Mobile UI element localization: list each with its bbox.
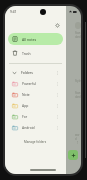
staticText: ⋮: [56, 71, 60, 75]
staticText: Manage folders: [24, 140, 47, 144]
staticText: ⋮: [56, 93, 60, 97]
button[interactable]: New note: [68, 150, 78, 160]
staticText: Note: [22, 92, 30, 97]
button[interactable]: Folders: [5, 67, 66, 78]
staticText: 1: [77, 141, 79, 145]
button[interactable]: Powerful: [5, 78, 66, 89]
staticText: ⋮: [56, 126, 60, 130]
button[interactable]: Settings: [53, 21, 62, 30]
button[interactable]: Manage folders: [5, 137, 66, 146]
button[interactable]: Note: [5, 89, 66, 100]
staticText: Standard: [75, 31, 81, 39]
staticText: ⋮: [56, 82, 60, 86]
staticText: ⋮: [56, 104, 60, 108]
button[interactable]: For: [5, 111, 66, 122]
button[interactable]: Trash: [8, 47, 63, 59]
button[interactable]: App: [5, 100, 66, 111]
staticText: For: [22, 114, 28, 119]
staticText: word: [75, 133, 81, 141]
staticText: App: [22, 103, 29, 108]
staticText: ⋮: [56, 115, 60, 119]
staticText: Powerful: [22, 81, 37, 86]
button[interactable]: Android: [5, 122, 66, 133]
staticText: Style: [75, 79, 81, 83]
staticText: Trash: [22, 51, 31, 56]
staticText: 9:41: [10, 10, 17, 14]
staticText: Folders: [21, 70, 33, 75]
staticText: Android: [22, 125, 35, 130]
staticText: All notes: [22, 37, 37, 42]
button[interactable]: All notes: [8, 33, 63, 45]
staticText: Standard: [75, 91, 81, 99]
